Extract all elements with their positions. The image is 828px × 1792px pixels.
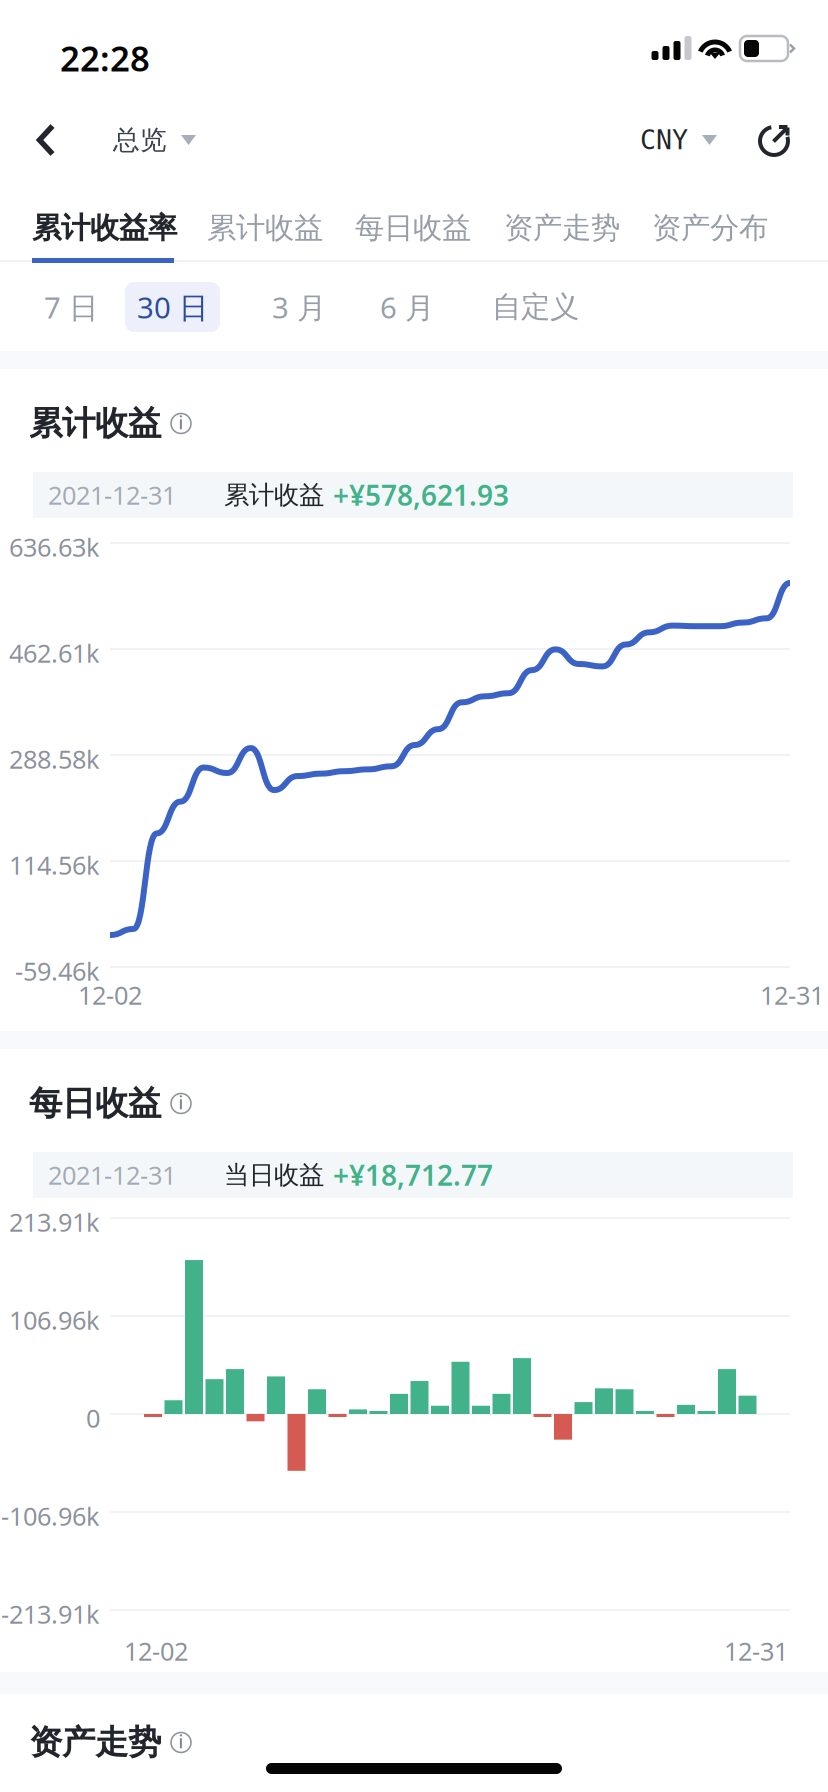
staticText: i xyxy=(178,411,183,434)
staticText: CNY xyxy=(640,124,688,155)
staticText: -59.46k xyxy=(15,954,100,988)
staticText: 114.56k xyxy=(9,848,100,882)
staticText: +¥18,712.77 xyxy=(333,1156,493,1194)
staticText: 2021-12-31 xyxy=(48,1158,176,1192)
staticText: 累计收益 xyxy=(207,210,323,246)
button[interactable]: 累计收益率 xyxy=(28,196,181,260)
staticText: 资产走势 xyxy=(29,1722,161,1763)
staticText: 累计收益 xyxy=(224,479,324,510)
button[interactable]: 总览 xyxy=(101,108,208,172)
staticText: 30 日 xyxy=(137,287,208,326)
staticText: 462.61k xyxy=(9,636,100,670)
staticText: 12-02 xyxy=(78,978,142,1012)
button[interactable]: 自定义 xyxy=(480,282,591,332)
staticText: 累计收益率 xyxy=(32,210,177,246)
staticText: 资产走势 xyxy=(504,210,620,246)
button[interactable]: 30 日 xyxy=(125,282,220,332)
staticText: 每日收益 xyxy=(29,1083,161,1124)
staticText: 22:28 xyxy=(60,35,150,81)
staticText: 当日收益 xyxy=(224,1159,324,1190)
staticText: 6 月 xyxy=(380,287,434,326)
staticText: -213.91k xyxy=(1,1597,100,1631)
staticText: 0 xyxy=(86,1401,100,1435)
staticText: 3 月 xyxy=(272,287,326,326)
staticText: 12-02 xyxy=(124,1634,188,1668)
button[interactable]: 7 日 xyxy=(32,282,110,332)
staticText: 106.96k xyxy=(9,1303,100,1337)
staticText: i xyxy=(178,1091,183,1114)
button[interactable]: Refresh xyxy=(746,111,804,169)
staticText: 12-31 xyxy=(724,1634,788,1668)
staticText: 每日收益 xyxy=(355,210,471,246)
staticText: 自定义 xyxy=(492,289,579,325)
staticText: 总览 xyxy=(113,124,167,156)
button[interactable]: 资产走势 xyxy=(500,196,624,260)
button[interactable]: 6 月 xyxy=(368,282,446,332)
staticText: 636.63k xyxy=(9,530,100,564)
button[interactable]: CNY xyxy=(628,108,729,172)
staticText: +¥578,621.93 xyxy=(333,476,509,514)
staticText: 288.58k xyxy=(9,742,100,776)
button[interactable]: 累计收益 xyxy=(203,196,327,260)
button[interactable]: Back xyxy=(14,108,78,172)
staticText: 资产分布 xyxy=(652,210,768,246)
button[interactable]: 资产分布 xyxy=(648,196,772,260)
staticText: -106.96k xyxy=(1,1499,100,1533)
staticText: 7 日 xyxy=(44,287,98,326)
staticText: 2021-12-31 xyxy=(48,478,176,512)
button[interactable]: 每日收益 xyxy=(351,196,475,260)
staticText: 213.91k xyxy=(9,1205,100,1239)
button[interactable]: 3 月 xyxy=(260,282,338,332)
staticText: 12-31 xyxy=(760,978,824,1012)
staticText: 累计收益 xyxy=(29,403,161,444)
staticText: i xyxy=(178,1730,183,1753)
